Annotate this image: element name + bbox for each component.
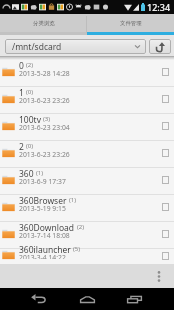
button[interactable]: 360Browser <box>0 195 174 221</box>
staticText: 2013-6-9 17:37 <box>19 177 66 185</box>
staticText: 1 <box>19 87 24 96</box>
button[interactable]: Select 360Download <box>152 222 174 248</box>
staticText: 2013-3-4 14:22 <box>19 253 66 259</box>
staticText: 360Browser <box>19 195 67 204</box>
button[interactable]: Back <box>24 288 53 310</box>
staticText: (5) <box>73 245 81 253</box>
button[interactable]: 360ilauncher <box>0 249 174 264</box>
staticText: 100tv <box>19 114 41 123</box>
button[interactable]: Select 100tv <box>152 114 174 140</box>
staticText: 文件管理 <box>120 20 142 27</box>
staticText: 2013-6-23 23:26 <box>19 96 70 104</box>
staticText: (3) <box>43 115 51 123</box>
staticText: (0) <box>26 142 34 150</box>
button[interactable]: Home <box>72 288 102 310</box>
button[interactable]: 360 <box>0 168 174 194</box>
staticText: 360ilauncher <box>19 244 71 253</box>
staticText: 360Download <box>19 222 75 231</box>
button[interactable]: 360Download <box>0 222 174 248</box>
button[interactable]: 文件管理 <box>87 14 174 35</box>
staticText: 2013-5-19 9:15 <box>19 204 66 212</box>
staticText: (1) <box>36 169 44 177</box>
staticText: (0) <box>26 88 34 96</box>
staticText: 2013-6-23 23:26 <box>19 150 70 158</box>
staticText: (1) <box>69 196 77 204</box>
button[interactable]: 2 <box>0 141 174 167</box>
button[interactable]: Select 360 <box>152 168 174 194</box>
staticText: /mnt/sdcard <box>12 41 62 53</box>
staticText: 0 <box>19 60 24 69</box>
staticText: 分类浏览 <box>33 20 55 27</box>
button[interactable]: Select 360Browser <box>152 195 174 221</box>
staticText: (2) <box>26 61 34 69</box>
staticText: (2) <box>77 223 85 231</box>
button[interactable]: 100tv <box>0 114 174 140</box>
button[interactable]: Select 0 <box>152 60 174 86</box>
button[interactable]: Recent apps <box>119 288 149 310</box>
staticText: 2 <box>19 141 24 150</box>
staticText: 2013-7-14 18:08 <box>19 231 70 239</box>
staticText: 2013-6-23 23:04 <box>19 123 70 131</box>
button[interactable]: More options <box>152 269 166 283</box>
button[interactable]: 0 <box>0 60 174 86</box>
button[interactable]: Select 2 <box>152 141 174 167</box>
button[interactable]: 分类浏览 <box>0 14 87 35</box>
button[interactable]: Select 360ilauncher <box>152 249 174 264</box>
staticText: 360 <box>19 168 34 177</box>
staticText: 2013-5-28 14:28 <box>19 69 70 77</box>
button[interactable]: Select 1 <box>152 87 174 113</box>
button[interactable]: Up one level <box>149 39 171 54</box>
staticText: 12:34 <box>147 1 171 13</box>
button[interactable]: /mnt/sdcard <box>5 39 146 54</box>
button[interactable]: 1 <box>0 87 174 113</box>
